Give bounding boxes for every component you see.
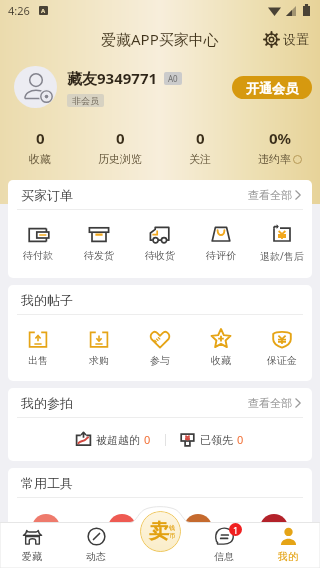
staticText: 信息 <box>214 550 234 563</box>
staticText: 待收货 <box>145 249 175 262</box>
staticText: 1 <box>233 524 239 536</box>
staticText: 退款/售后 <box>260 249 304 263</box>
button[interactable]: 被超越的 <box>76 432 151 447</box>
button[interactable]: 待发货 <box>68 223 129 262</box>
button[interactable]: 出售 <box>8 328 68 367</box>
staticText: 查看全部 <box>248 188 292 202</box>
staticText: 0 <box>36 128 45 148</box>
button[interactable]: 0 <box>80 128 160 166</box>
staticText: 0 <box>144 432 151 447</box>
staticText: 爱藏 <box>22 550 42 563</box>
button[interactable]: 待付款 <box>8 223 68 262</box>
button[interactable]: 1 <box>192 522 256 568</box>
staticText: 钱 <box>169 524 175 532</box>
staticText: 待评价 <box>206 249 236 262</box>
staticText: 我的帖子 <box>21 292 73 308</box>
button[interactable]: 0 <box>0 128 80 166</box>
button[interactable]: 动态 <box>64 522 128 568</box>
staticText: 4:26 <box>8 3 30 18</box>
staticText: 被超越的 <box>96 433 140 447</box>
staticText: 爱藏APP买家中心 <box>101 29 219 49</box>
button[interactable]: 查看全部 <box>246 394 303 412</box>
button[interactable]: 收藏 <box>190 328 251 367</box>
button[interactable]: 爱藏 <box>0 522 64 568</box>
button[interactable]: 查看全部 <box>246 186 303 204</box>
button[interactable]: 0 <box>160 128 240 166</box>
staticText: 币 <box>169 532 175 540</box>
staticText: 待发货 <box>84 249 114 262</box>
button[interactable]: 开通会员 <box>232 76 312 99</box>
staticText: 0% <box>269 128 292 148</box>
staticText: 设置 <box>283 31 309 47</box>
staticText: 我的参拍 <box>21 395 73 411</box>
staticText: 查看全部 <box>248 396 292 410</box>
staticText: 收藏 <box>29 152 51 166</box>
staticText: 0 <box>116 128 125 148</box>
staticText: 参与 <box>150 354 170 367</box>
button[interactable]: 设置 <box>261 28 312 50</box>
staticText: 我的 <box>278 550 298 563</box>
staticText: A0 <box>168 73 178 84</box>
staticText: 保证金 <box>267 354 297 367</box>
staticText: A <box>41 7 46 15</box>
staticText: 求购 <box>89 354 109 367</box>
button[interactable]: 我的 <box>256 522 320 568</box>
staticText: 买家订单 <box>21 187 73 203</box>
staticText: 开通会员 <box>246 80 298 96</box>
button[interactable]: 已领先 <box>180 432 244 447</box>
button[interactable]: 待评价 <box>190 223 251 262</box>
staticText: 历史浏览 <box>98 152 142 166</box>
staticText: 关注 <box>189 152 211 166</box>
button[interactable]: 求购 <box>68 328 129 367</box>
staticText: 已领先 <box>200 433 233 447</box>
staticText: 动态 <box>86 550 106 563</box>
button[interactable]: 0% <box>240 128 320 166</box>
staticText: 卖 <box>149 519 169 544</box>
staticText: 出售 <box>28 354 48 367</box>
button[interactable]: 参与 <box>129 328 190 367</box>
button[interactable]: 卖钱币 <box>140 511 181 552</box>
staticText: 待付款 <box>23 249 53 262</box>
staticText: 常用工具 <box>21 475 73 491</box>
staticText: 违约率 <box>258 152 291 166</box>
button[interactable]: 保证金 <box>251 328 312 367</box>
staticText: 0 <box>237 432 244 447</box>
staticText: 0 <box>196 128 205 148</box>
staticText: 非会员 <box>72 95 99 106</box>
staticText: 收藏 <box>211 354 231 367</box>
button[interactable]: 待收货 <box>129 223 190 262</box>
staticText: 藏友9349771 <box>67 68 158 88</box>
button[interactable]: 退款/售后 <box>251 223 312 263</box>
